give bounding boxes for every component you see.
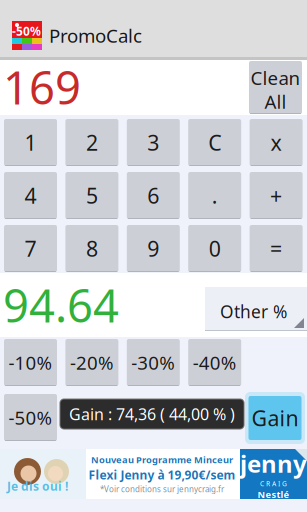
staticText: C R A I G: [260, 479, 287, 488]
staticText: 2: [86, 128, 98, 157]
staticText: 169: [3, 57, 81, 117]
button[interactable]: 0: [188, 225, 241, 272]
button[interactable]: 7: [4, 225, 57, 272]
staticText: *Voir conditions sur jennycraig.fr: [100, 484, 224, 494]
button[interactable]: -10%: [4, 339, 57, 386]
button[interactable]: C: [188, 119, 241, 166]
staticText: All: [264, 89, 286, 114]
staticText: 94.64: [3, 275, 119, 335]
button[interactable]: 4: [4, 172, 57, 219]
button[interactable]: Other %: [205, 287, 307, 331]
button[interactable]: 2: [65, 119, 118, 166]
staticText: 8: [86, 234, 98, 263]
staticText: C: [208, 128, 221, 157]
button[interactable]: .: [188, 172, 241, 219]
staticText: -50%: [12, 23, 41, 39]
button[interactable]: Gain: [245, 392, 305, 444]
staticText: jenny: [240, 447, 307, 479]
staticText: 7: [24, 234, 36, 263]
staticText: =: [270, 234, 282, 263]
staticText: Je dis oui !: [7, 478, 68, 494]
staticText: Gain: [251, 404, 298, 432]
button[interactable]: 5: [65, 172, 118, 219]
button[interactable]: -30%: [127, 339, 180, 386]
staticText: 4: [24, 181, 36, 210]
staticText: 1: [24, 128, 36, 157]
button[interactable]: 3: [127, 119, 180, 166]
staticText: Nouveau Programme Minceur: [91, 453, 233, 466]
button[interactable]: Advertisement: Flexi Jenny: [0, 449, 307, 499]
staticText: Nestlé: [257, 488, 289, 501]
staticText: 3: [147, 128, 159, 157]
staticText: 9: [147, 234, 159, 263]
staticText: Gain : 74,36 ( 44,00 % ): [69, 403, 235, 425]
button[interactable]: -50%: [4, 394, 57, 441]
staticText: +: [270, 181, 282, 210]
button[interactable]: 8: [65, 225, 118, 272]
staticText: PromoCalc: [49, 23, 142, 48]
staticText: Other %: [220, 300, 287, 323]
button[interactable]: x: [250, 119, 303, 166]
button[interactable]: =: [250, 225, 303, 272]
staticText: 0: [209, 234, 221, 263]
button[interactable]: Clean: [249, 61, 302, 114]
staticText: -40%: [193, 350, 237, 375]
staticText: -50%: [8, 405, 52, 430]
button[interactable]: -20%: [65, 339, 118, 386]
button[interactable]: 1: [4, 119, 57, 166]
button[interactable]: -40%: [188, 339, 241, 386]
staticText: .: [212, 181, 218, 210]
staticText: Clean: [250, 65, 300, 90]
staticText: x: [271, 128, 282, 157]
staticText: Flexi Jenny à 19,90€/sem: [88, 467, 235, 483]
button[interactable]: 9: [127, 225, 180, 272]
staticText: 5: [86, 181, 98, 210]
staticText: -10%: [8, 350, 52, 375]
button[interactable]: 6: [127, 172, 180, 219]
staticText: -20%: [70, 350, 114, 375]
staticText: 6: [147, 181, 159, 210]
button[interactable]: +: [250, 172, 303, 219]
staticText: -30%: [131, 350, 175, 375]
